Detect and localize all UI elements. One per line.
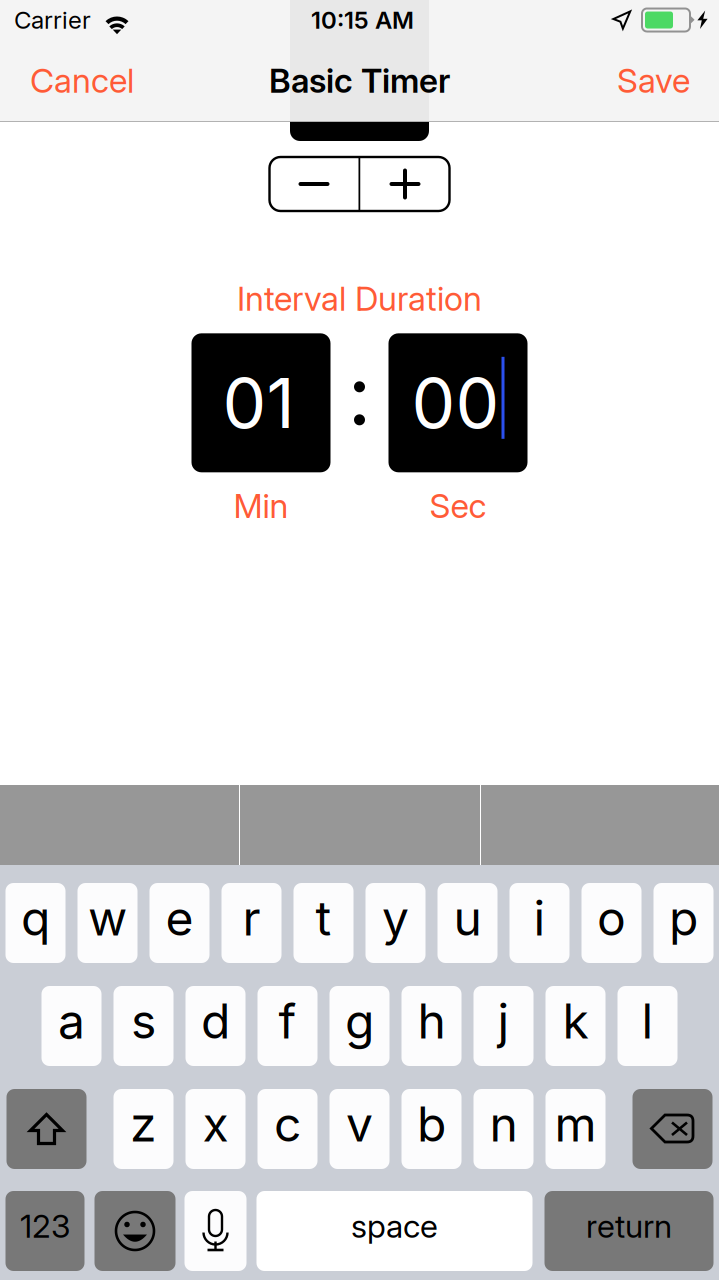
button[interactable]: x [185, 1089, 245, 1169]
button[interactable]: Delete [632, 1089, 712, 1169]
staticText: b [417, 1096, 446, 1152]
staticText: s [131, 993, 156, 1049]
button[interactable]: t [293, 883, 353, 963]
button[interactable]: g [329, 986, 389, 1066]
staticText: f [278, 993, 296, 1049]
staticText: l [641, 993, 653, 1049]
staticText: Save [617, 61, 690, 100]
staticText: Carrier [14, 6, 91, 34]
staticText: z [130, 1096, 157, 1152]
button[interactable]: w [77, 883, 137, 963]
staticText: x [202, 1096, 228, 1152]
button[interactable]: Min [191, 333, 330, 472]
button[interactable]: Sec [388, 333, 527, 472]
staticText: j [497, 993, 509, 1049]
staticText: 123 [20, 1207, 70, 1245]
button[interactable]: return [544, 1191, 713, 1271]
staticText: w [88, 890, 127, 946]
staticText: m [554, 1096, 596, 1152]
staticText: i [533, 890, 545, 946]
staticText: q [21, 890, 50, 946]
button[interactable]: v [329, 1089, 389, 1169]
button[interactable]: s [113, 986, 173, 1066]
button[interactable]: i [509, 883, 569, 963]
staticText: c [274, 1096, 301, 1152]
staticText: Sec [429, 486, 486, 526]
staticText: a [58, 993, 85, 1049]
staticText: n [489, 1096, 517, 1152]
staticText: d [201, 993, 230, 1049]
staticText: Min [233, 486, 288, 526]
button[interactable]: h [401, 986, 461, 1066]
button[interactable]: b [401, 1089, 461, 1169]
staticText: t [315, 890, 331, 946]
button[interactable]: 123 [5, 1191, 84, 1271]
button[interactable]: q [5, 883, 65, 963]
button[interactable]: Shift [6, 1089, 86, 1169]
button[interactable]: l [617, 986, 677, 1066]
button[interactable]: j [473, 986, 533, 1066]
button[interactable]: z [113, 1089, 173, 1169]
button[interactable]: o [581, 883, 641, 963]
button[interactable]: r [221, 883, 281, 963]
button[interactable]: u [437, 883, 497, 963]
staticText: e [165, 890, 193, 946]
button[interactable]: Cancel [14, 47, 150, 114]
staticText: r [242, 890, 260, 946]
staticText: space [351, 1207, 438, 1245]
button[interactable]: n [473, 1089, 533, 1169]
button[interactable]: Increase [360, 157, 449, 211]
staticText: o [597, 890, 626, 946]
staticText: h [417, 993, 445, 1049]
staticText: p [669, 890, 698, 946]
staticText: v [346, 1096, 373, 1152]
staticText: Interval Duration [237, 279, 482, 318]
staticText: y [382, 890, 409, 946]
button[interactable]: c [257, 1089, 317, 1169]
button[interactable]: Dictation [184, 1191, 246, 1271]
button[interactable]: space [256, 1191, 532, 1271]
button[interactable]: k [545, 986, 605, 1066]
staticText: g [345, 993, 374, 1049]
staticText: Basic Timer [269, 61, 450, 100]
button[interactable]: p [653, 883, 713, 963]
staticText: k [562, 993, 588, 1049]
button[interactable]: y [365, 883, 425, 963]
staticText: 01 [222, 362, 294, 444]
button[interactable]: m [545, 1089, 605, 1169]
button[interactable]: Decrease [269, 157, 358, 211]
button[interactable]: a [41, 986, 101, 1066]
staticText: 00 [411, 362, 499, 444]
staticText: 10:15 AM [311, 6, 414, 34]
button[interactable]: Save [601, 47, 706, 114]
button[interactable]: d [185, 986, 245, 1066]
button[interactable]: f [257, 986, 317, 1066]
staticText: return [586, 1207, 672, 1245]
button[interactable]: e [149, 883, 209, 963]
button[interactable]: Emoji [94, 1191, 175, 1271]
staticText: u [453, 890, 481, 946]
staticText: Cancel [30, 61, 134, 100]
